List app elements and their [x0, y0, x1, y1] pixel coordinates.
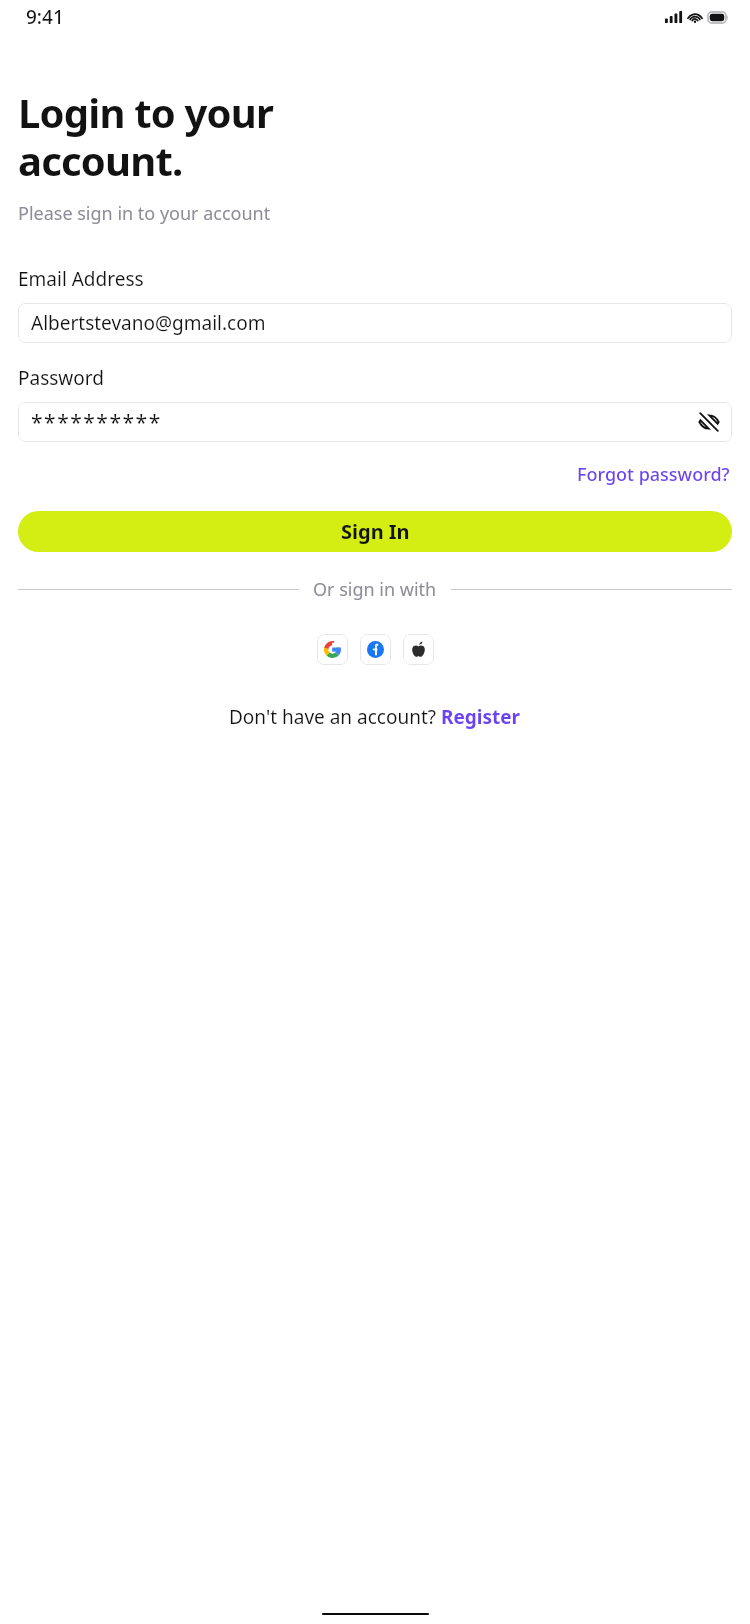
button[interactable]: **********: [18, 402, 732, 442]
button[interactable]: Sign in with Google: [317, 634, 348, 665]
staticText: Or sign in with: [313, 577, 437, 602]
staticText: Sign In: [341, 518, 410, 545]
staticText: Forgot password?: [577, 462, 730, 487]
staticText: Please sign in to your account: [18, 201, 271, 226]
staticText: **********: [31, 408, 162, 437]
staticText: Login to your account.: [18, 85, 274, 187]
button[interactable]: Sign in with Facebook: [360, 634, 391, 665]
staticText: Don't have an account? Register: [229, 704, 521, 730]
button[interactable]: Sign in with Apple: [403, 634, 434, 665]
button[interactable]: Forgot password?: [575, 458, 732, 491]
button[interactable]: Show password: [694, 407, 724, 437]
button[interactable]: Sign In: [18, 511, 732, 552]
staticText: Email Address: [18, 266, 144, 292]
button[interactable]: Don't have an account? Register: [227, 701, 523, 733]
staticText: Albertstevano@gmail.com: [31, 310, 266, 336]
staticText: 9:41: [26, 4, 64, 30]
button[interactable]: Albertstevano@gmail.com: [18, 303, 732, 343]
staticText: Password: [18, 365, 104, 391]
